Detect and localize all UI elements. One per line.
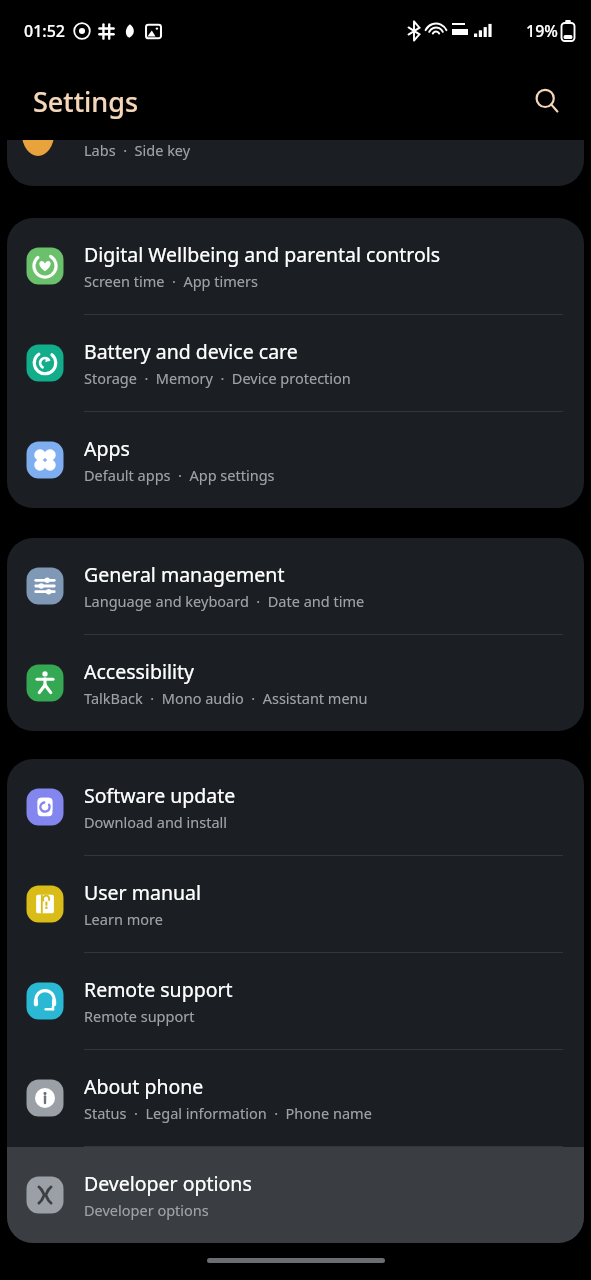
- staticText: Battery and device care: [84, 338, 298, 365]
- staticText: Default apps · App settings: [84, 465, 275, 485]
- staticText: User manual: [84, 879, 201, 906]
- staticText: Language and keyboard · Date and time: [84, 591, 365, 611]
- staticText: Accessibility: [84, 658, 194, 685]
- button[interactable]: Digital Wellbeing and parental controls: [7, 218, 584, 314]
- staticText: 01:52: [24, 20, 65, 42]
- staticText: TalkBack · Mono audio · Assistant menu: [84, 688, 368, 708]
- button[interactable]: General management: [7, 538, 584, 634]
- button[interactable]: Developer options: [7, 1147, 584, 1243]
- staticText: Status · Legal information · Phone name: [84, 1103, 372, 1123]
- staticText: Settings: [33, 83, 139, 120]
- staticText: Remote support: [84, 1006, 195, 1026]
- staticText: Remote support: [84, 976, 233, 1003]
- button[interactable]: Search: [525, 79, 569, 123]
- button[interactable]: About phone: [7, 1050, 584, 1146]
- staticText: About phone: [84, 1073, 204, 1100]
- staticText: Screen time · App timers: [84, 271, 258, 291]
- button[interactable]: Accessibility: [7, 635, 584, 731]
- button[interactable]: Remote support: [7, 953, 584, 1049]
- staticText: Download and install: [84, 812, 228, 832]
- staticText: 19%: [526, 20, 558, 42]
- button[interactable]: Apps: [7, 412, 584, 508]
- button[interactable]: Labs · Side key: [7, 140, 584, 186]
- staticText: Storage · Memory · Device protection: [84, 368, 351, 388]
- staticText: Developer options: [84, 1200, 209, 1220]
- staticText: Labs · Side key: [84, 140, 191, 160]
- staticText: General management: [84, 561, 285, 588]
- button[interactable]: Battery and device care: [7, 315, 584, 411]
- button[interactable]: Software update: [7, 759, 584, 855]
- staticText: Learn more: [84, 909, 163, 929]
- button[interactable]: User manual: [7, 856, 584, 952]
- staticText: Developer options: [84, 1170, 252, 1197]
- staticText: Digital Wellbeing and parental controls: [84, 241, 441, 268]
- staticText: Apps: [84, 435, 130, 462]
- staticText: Software update: [84, 782, 236, 809]
